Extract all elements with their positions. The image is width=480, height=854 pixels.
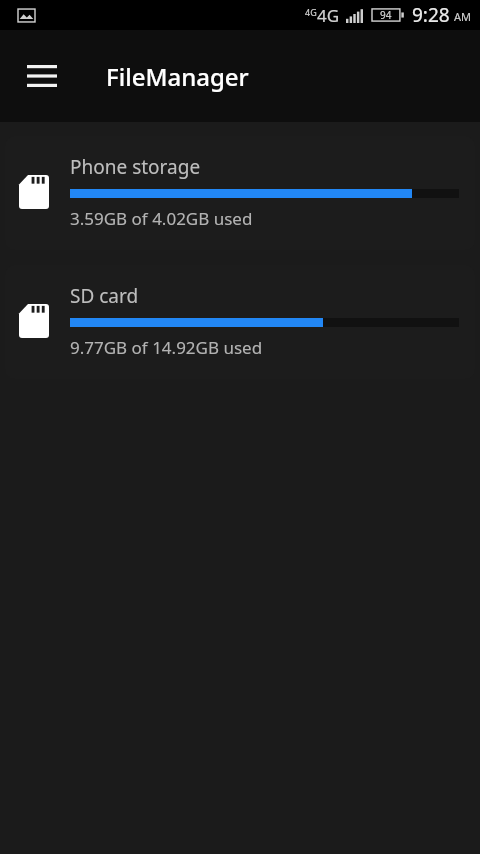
staticText: 4G — [305, 6, 317, 18]
button[interactable]: Phone storage — [5, 136, 475, 250]
staticText: 4G — [317, 4, 340, 27]
staticText: AM — [454, 9, 472, 24]
button[interactable]: Open navigation drawer — [10, 44, 74, 108]
staticText: 94 — [380, 8, 392, 22]
staticText: 3.59GB of 4.02GB used — [70, 207, 253, 230]
staticText: Phone storage — [70, 154, 201, 180]
staticText: 9:28 — [412, 2, 450, 28]
button[interactable]: SD card — [5, 265, 475, 379]
staticText: SD card — [70, 283, 139, 309]
staticText: FileManager — [106, 60, 249, 93]
staticText: 9.77GB of 14.92GB used — [70, 336, 263, 359]
